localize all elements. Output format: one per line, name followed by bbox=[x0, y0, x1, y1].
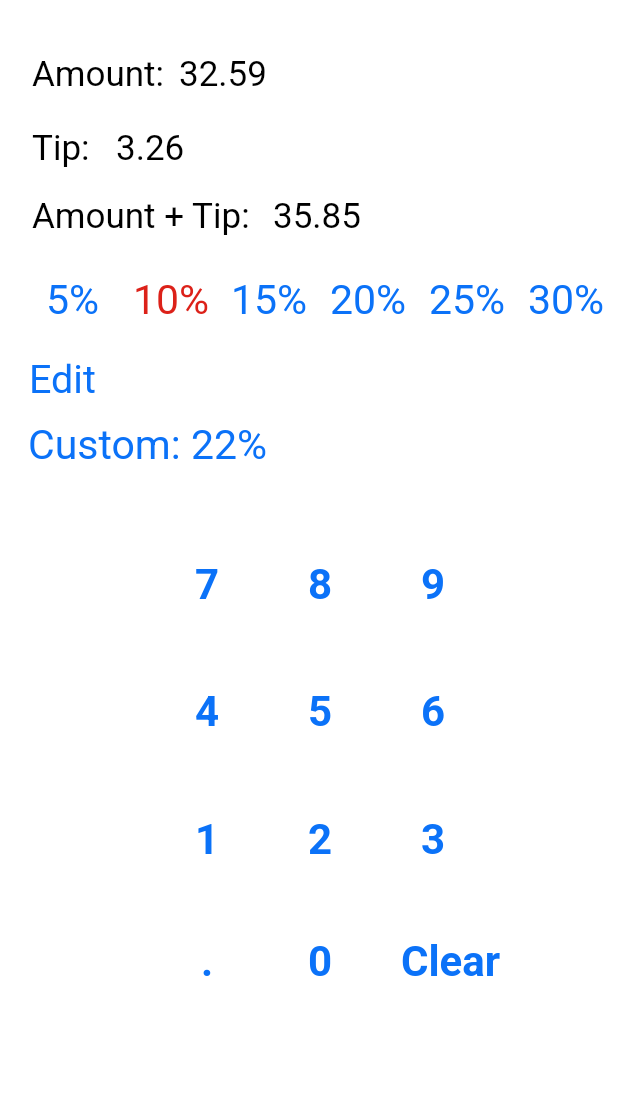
button[interactable]: 8 bbox=[264, 534, 377, 648]
button[interactable]: 9 bbox=[377, 534, 490, 648]
button[interactable]: Edit bbox=[29, 356, 96, 402]
staticText: 4 bbox=[195, 687, 220, 736]
staticText: 20% bbox=[330, 276, 407, 324]
button[interactable]: 3 bbox=[377, 789, 490, 903]
button[interactable]: 15% bbox=[220, 271, 319, 329]
button[interactable]: 25% bbox=[418, 271, 517, 329]
button[interactable]: . bbox=[151, 911, 264, 1025]
button[interactable]: 5 bbox=[264, 661, 377, 775]
staticText: 32.59 bbox=[179, 54, 267, 95]
staticText: 10% bbox=[133, 276, 210, 324]
button[interactable]: 0 bbox=[264, 911, 377, 1025]
staticText: 1 bbox=[195, 815, 220, 864]
staticText: Amount + Tip: bbox=[32, 196, 250, 237]
button[interactable]: 10% bbox=[122, 271, 220, 329]
staticText: 8 bbox=[308, 560, 333, 609]
staticText: Tip: bbox=[32, 128, 90, 169]
staticText: Edit bbox=[29, 356, 96, 402]
button[interactable]: 4 bbox=[151, 661, 264, 775]
staticText: 6 bbox=[421, 687, 446, 736]
staticText: 25% bbox=[429, 276, 506, 324]
button[interactable]: Custom: 22% bbox=[28, 421, 268, 471]
staticText: 9 bbox=[421, 560, 446, 609]
staticText: 5 bbox=[308, 687, 333, 736]
staticText: 35.85 bbox=[273, 196, 361, 237]
staticText: 2 bbox=[308, 815, 333, 864]
staticText: . bbox=[201, 937, 214, 986]
button[interactable]: 5% bbox=[24, 271, 122, 329]
button[interactable]: 30% bbox=[517, 271, 616, 329]
button[interactable]: 7 bbox=[151, 534, 264, 648]
button[interactable]: 1 bbox=[151, 789, 264, 903]
staticText: Custom: 22% bbox=[28, 421, 268, 469]
staticText: 3.26 bbox=[116, 128, 185, 169]
staticText: 7 bbox=[195, 560, 220, 609]
staticText: 15% bbox=[231, 276, 308, 324]
button[interactable]: Clear bbox=[377, 911, 524, 1025]
staticText: 30% bbox=[528, 276, 605, 324]
button[interactable]: 6 bbox=[377, 661, 490, 775]
staticText: 0 bbox=[308, 937, 333, 986]
staticText: 3 bbox=[421, 815, 446, 864]
staticText: Amount: bbox=[32, 54, 165, 95]
button[interactable]: 20% bbox=[319, 271, 418, 329]
staticText: Clear bbox=[401, 937, 501, 986]
staticText: 5% bbox=[46, 276, 100, 324]
button[interactable]: 2 bbox=[264, 789, 377, 903]
